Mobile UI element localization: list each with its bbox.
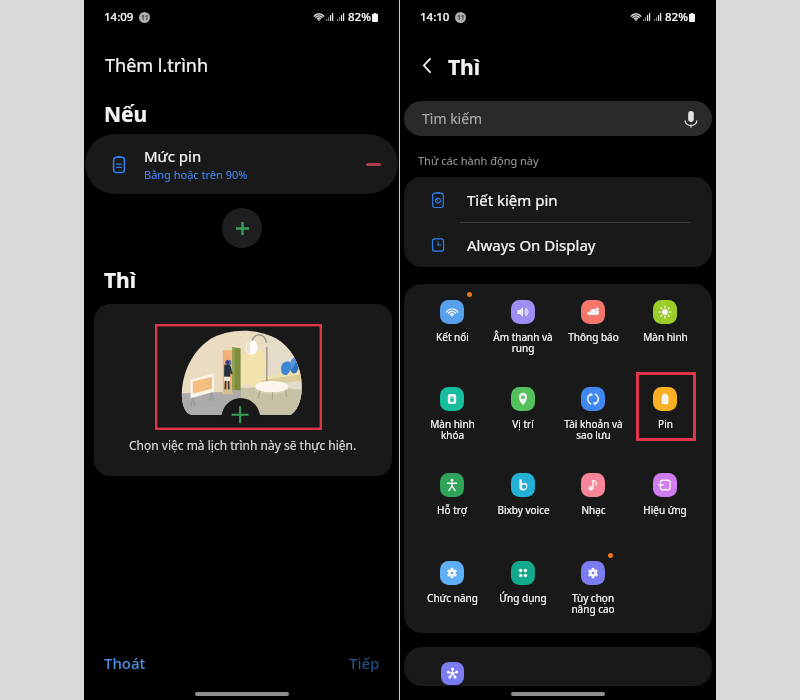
staticText: Âm thanh và rung: [493, 330, 553, 355]
button[interactable]: Tiếp: [343, 648, 386, 678]
button[interactable]: Hiệu ứng: [630, 465, 700, 528]
staticText: 82%: [665, 9, 688, 25]
button[interactable]: Âm thanh và rung: [488, 292, 558, 355]
button[interactable]: Màn hình: [630, 292, 700, 355]
button[interactable]: Pin: [630, 379, 700, 442]
staticText: 14:09: [104, 9, 134, 25]
button[interactable]: Hỗ trợ: [417, 465, 487, 528]
button[interactable]: Always On Display: [404, 223, 712, 267]
staticText: Hỗ trợ: [437, 503, 467, 517]
staticText: Ứng dụng: [499, 591, 547, 605]
staticText: Thì: [448, 53, 481, 82]
staticText: Kết nối: [436, 330, 469, 344]
button[interactable]: Thoát: [98, 648, 152, 678]
staticText: Pin: [658, 417, 673, 431]
button[interactable]: Bixby voice: [488, 465, 558, 528]
button[interactable]: Chức năng: [417, 553, 487, 616]
staticText: Nhạc: [581, 503, 606, 517]
staticText: Hiệu ứng: [643, 503, 687, 517]
staticText: Mức pin: [144, 146, 202, 166]
staticText: Thử các hành động này: [418, 153, 539, 168]
staticText: 82%: [348, 9, 371, 25]
staticText: Tài khoản và sao lưu: [564, 417, 623, 442]
button[interactable]: Remove condition: [355, 146, 391, 182]
button[interactable]: Màn hình khóa: [417, 379, 487, 442]
button[interactable]: Nhạc: [558, 465, 628, 528]
button[interactable]: Add condition: [222, 208, 262, 248]
staticText: 14:10: [420, 9, 450, 25]
staticText: Tiết kiệm pin: [467, 190, 558, 210]
staticText: Thoát: [104, 653, 146, 673]
button[interactable]: Thông báo: [558, 292, 628, 355]
staticText: Tiếp: [349, 653, 380, 673]
button[interactable]: Kết nối: [417, 292, 487, 355]
staticText: 11: [141, 13, 149, 22]
staticText: Thông báo: [568, 330, 619, 344]
staticText: Tìm kiếm: [422, 109, 483, 128]
staticText: Chức năng: [427, 591, 478, 605]
button[interactable]: Tùy chọn nâng cao: [558, 553, 628, 616]
button[interactable]: Mức pin: [85, 134, 398, 194]
staticText: Tùy chọn nâng cao: [571, 591, 615, 616]
staticText: Thêm l.trình: [105, 53, 209, 78]
button[interactable]: Tìm kiếm: [404, 101, 712, 136]
staticText: Màn hình khóa: [430, 417, 475, 442]
staticText: Màn hình: [643, 330, 688, 344]
button[interactable]: [404, 647, 712, 686]
staticText: Vị trí: [512, 417, 534, 431]
button[interactable]: Chọn việc mà lịch trình này sẽ thực hiện…: [94, 304, 392, 476]
staticText: Bằng hoặc trên 90%: [144, 167, 248, 182]
staticText: Always On Display: [467, 235, 596, 255]
button[interactable]: Tài khoản và sao lưu: [558, 379, 628, 442]
staticText: Nếu: [104, 100, 148, 129]
staticText: Thì: [104, 266, 137, 295]
button[interactable]: Back: [412, 50, 442, 80]
button[interactable]: Voice search: [679, 107, 703, 131]
button[interactable]: Tiết kiệm pin: [404, 177, 712, 222]
staticText: Bixby voice: [497, 503, 550, 517]
button[interactable]: Vị trí: [488, 379, 558, 442]
staticText: Chọn việc mà lịch trình này sẽ thực hiện…: [129, 437, 357, 453]
button[interactable]: Ứng dụng: [488, 553, 558, 616]
staticText: 11: [457, 13, 465, 22]
